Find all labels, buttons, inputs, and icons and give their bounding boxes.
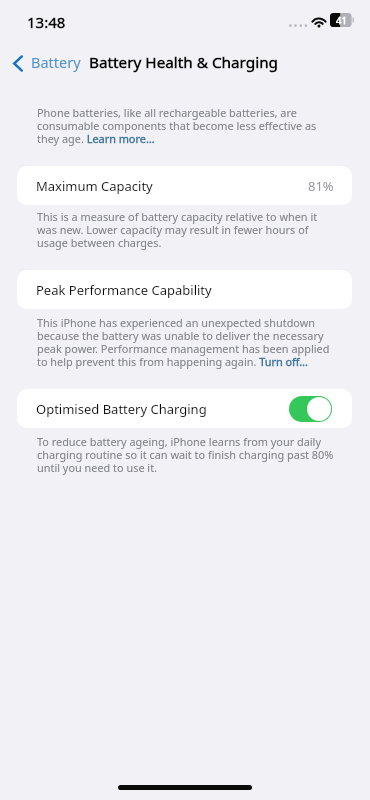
staticText: 13:48	[27, 12, 66, 32]
staticText: To reduce battery ageing, iPhone learns …	[37, 436, 337, 475]
button[interactable]: Maximum Capacity	[36, 166, 334, 205]
staticText: This is a measure of battery capacity re…	[37, 211, 337, 250]
staticText: Peak Performance Capability	[36, 281, 212, 299]
staticText: Phone batteries, like all rechargeable b…	[37, 107, 337, 146]
staticText: Optimised Battery Charging	[36, 400, 207, 418]
button[interactable]: Optimised Battery Charging	[289, 396, 332, 422]
staticText: Battery	[31, 52, 81, 72]
staticText: Maximum Capacity	[36, 177, 153, 195]
staticText: 41	[336, 14, 347, 27]
staticText: This iPhone has experienced an unexpecte…	[37, 317, 337, 369]
staticText: 81%	[308, 177, 334, 195]
button[interactable]: Peak Performance Capability	[17, 270, 352, 309]
button[interactable]: Battery	[0, 49, 89, 77]
staticText: Battery Health & Charging	[89, 52, 278, 73]
